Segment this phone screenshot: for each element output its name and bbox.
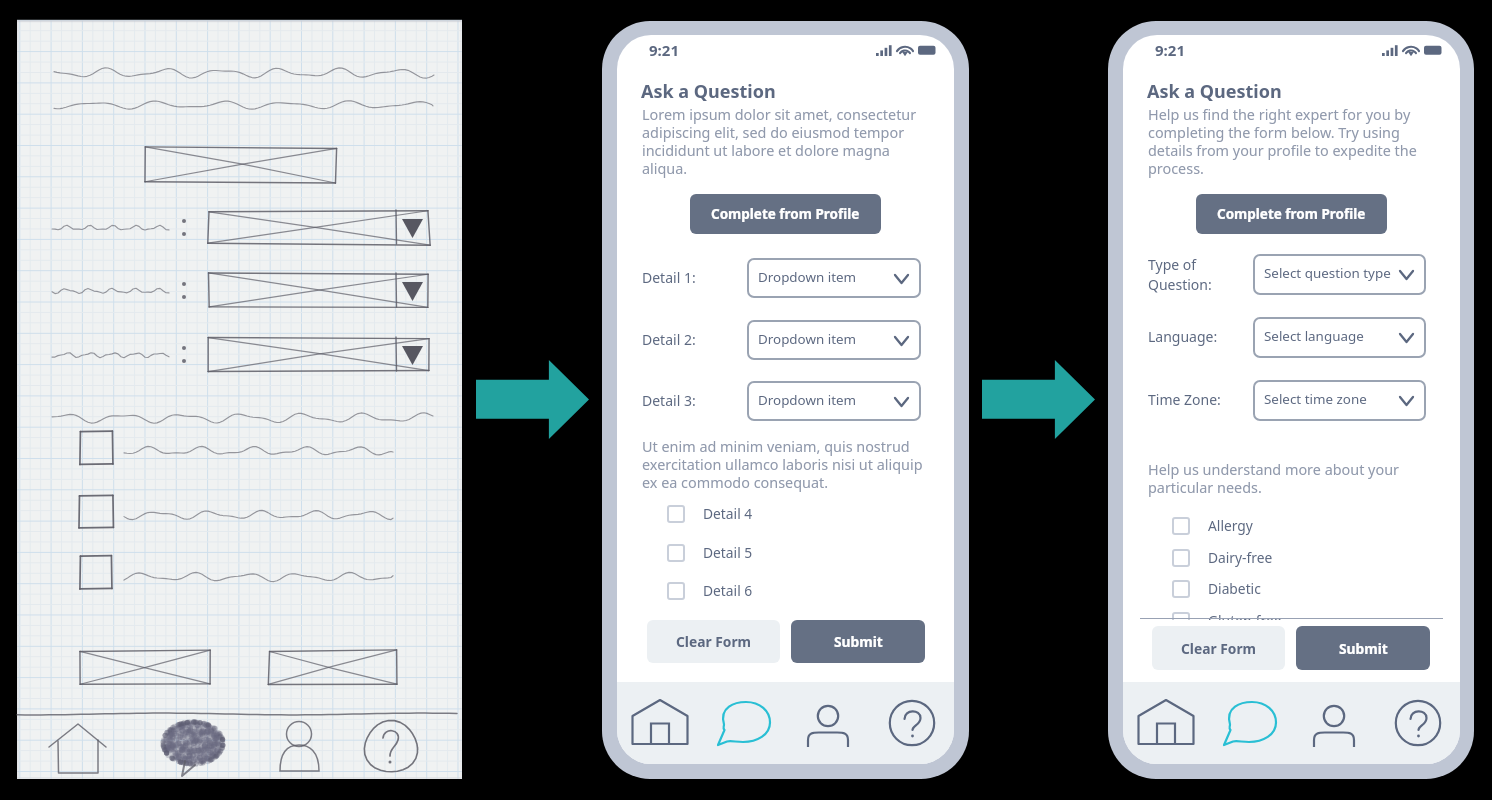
button[interactable]: Select language: [1253, 317, 1426, 358]
staticText: Complete from Profile: [1217, 205, 1366, 223]
staticText: Time Zone:: [1148, 390, 1221, 409]
staticText: Help us find the right expert for you by…: [1148, 105, 1440, 178]
button[interactable]: Help: [870, 682, 954, 764]
staticText: Language:: [1148, 327, 1218, 346]
staticText: Detail 1:: [642, 268, 696, 287]
staticText: Lorem ipsum dolor sit amet, consectetur …: [642, 105, 934, 178]
button[interactable]: Select question type: [1253, 254, 1426, 295]
button[interactable]: Dropdown item: [747, 258, 921, 298]
staticText: Detail 6: [703, 581, 753, 600]
button[interactable]: Home: [1123, 682, 1208, 764]
button[interactable]: Dropdown item: [747, 320, 921, 360]
button[interactable]: Complete from Profile: [690, 194, 881, 234]
staticText: Help us understand more about your parti…: [1148, 460, 1440, 497]
staticText: Gluten-free: [1208, 611, 1282, 630]
staticText: Clear Form: [1181, 639, 1257, 658]
button[interactable]: Dairy-free: [1162, 542, 1332, 573]
button[interactable]: Detail 6: [657, 575, 827, 613]
staticText: Dropdown item: [758, 330, 857, 348]
staticText: Dropdown item: [758, 391, 857, 409]
button[interactable]: Clear Form: [647, 620, 780, 663]
button[interactable]: Submit: [791, 620, 925, 663]
button[interactable]: Select time zone: [1253, 380, 1426, 421]
staticText: Allergy: [1208, 516, 1253, 535]
staticText: Submit: [1339, 639, 1388, 658]
button[interactable]: Allergy: [1162, 510, 1332, 541]
button[interactable]: Submit: [1296, 626, 1430, 670]
staticText: Diabetic: [1208, 579, 1261, 598]
staticText: Ask a Question: [1147, 79, 1282, 104]
staticText: 9:21: [649, 40, 679, 60]
staticText: Submit: [834, 632, 883, 651]
button[interactable]: Diabetic: [1162, 573, 1332, 604]
button[interactable]: Complete from Profile: [1196, 194, 1387, 234]
staticText: Select time zone: [1264, 390, 1367, 408]
staticText: Detail 5: [703, 543, 753, 562]
staticText: Dairy-free: [1208, 548, 1273, 567]
staticText: Type of Question:: [1148, 255, 1212, 294]
button[interactable]: Messages: [1208, 682, 1292, 764]
button[interactable]: Detail 5: [657, 537, 827, 575]
staticText: Detail 4: [703, 504, 753, 523]
staticText: Select question type: [1264, 264, 1391, 282]
button[interactable]: Gluten-free: [1162, 605, 1332, 636]
staticText: Complete from Profile: [711, 205, 860, 223]
staticText: Ut enim ad minim veniam, quis nostrud ex…: [642, 437, 934, 492]
button[interactable]: Home: [617, 682, 702, 764]
button[interactable]: Clear Form: [1152, 626, 1285, 670]
button[interactable]: Dropdown item: [747, 381, 921, 421]
staticText: Detail 2:: [642, 330, 696, 349]
button[interactable]: Messages: [702, 682, 786, 764]
staticText: Clear Form: [676, 632, 752, 651]
button[interactable]: Profile: [786, 682, 870, 764]
button[interactable]: Profile: [1292, 682, 1376, 764]
staticText: Ask a Question: [641, 79, 776, 104]
staticText: Select language: [1264, 327, 1364, 345]
button[interactable]: Detail 4: [657, 498, 827, 536]
staticText: Detail 3:: [642, 391, 696, 410]
staticText: Dropdown item: [758, 268, 857, 286]
button[interactable]: Help: [1376, 682, 1460, 764]
staticText: 9:21: [1155, 40, 1185, 60]
